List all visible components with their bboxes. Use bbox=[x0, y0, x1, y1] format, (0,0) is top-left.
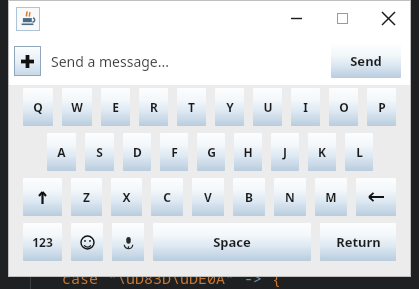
staticText: X bbox=[122, 189, 131, 205]
staticText: E bbox=[112, 99, 119, 115]
button[interactable]: J bbox=[271, 133, 299, 171]
staticText: S bbox=[96, 144, 103, 160]
button[interactable]: Maximize bbox=[319, 0, 365, 37]
button[interactable]: I bbox=[291, 88, 320, 126]
staticText: C bbox=[163, 189, 171, 205]
staticText: { bbox=[272, 268, 282, 288]
staticText: Q bbox=[33, 99, 43, 115]
staticText: I bbox=[303, 99, 308, 115]
button[interactable]: Minimize bbox=[273, 0, 319, 37]
staticText: N bbox=[285, 189, 295, 205]
staticText: W bbox=[71, 99, 83, 115]
button[interactable]: Z bbox=[71, 178, 102, 216]
staticText: G bbox=[207, 144, 216, 160]
button[interactable]: Backspace bbox=[356, 178, 396, 216]
button[interactable]: Y bbox=[215, 88, 244, 126]
staticText: B bbox=[245, 189, 253, 205]
button[interactable]: N bbox=[274, 178, 306, 216]
button[interactable]: Send a message... bbox=[51, 37, 327, 85]
other: App icon bbox=[16, 7, 40, 31]
staticText: Z bbox=[83, 189, 90, 205]
button[interactable]: Close bbox=[365, 0, 411, 37]
staticText: O bbox=[339, 99, 349, 115]
button[interactable]: W bbox=[62, 88, 92, 126]
staticText: L bbox=[356, 144, 363, 160]
staticText: "\uD83D\uDE0A" bbox=[108, 268, 235, 288]
button[interactable]: O bbox=[329, 88, 358, 126]
button[interactable]: V bbox=[192, 178, 224, 216]
button[interactable]: Send bbox=[331, 44, 401, 78]
button[interactable]: Q bbox=[23, 88, 53, 126]
button[interactable]: A bbox=[47, 133, 76, 171]
staticText: M bbox=[325, 189, 337, 205]
button[interactable]: U bbox=[253, 88, 282, 126]
button[interactable]: B bbox=[233, 178, 265, 216]
staticText: Send bbox=[350, 52, 382, 70]
staticText: V bbox=[204, 189, 212, 205]
button[interactable]: Shift bbox=[23, 178, 62, 216]
staticText: Send a message... bbox=[51, 52, 169, 71]
button[interactable]: 123 bbox=[23, 223, 62, 261]
staticText: K bbox=[318, 144, 326, 160]
button[interactable]: Space bbox=[153, 223, 311, 261]
button[interactable]: C bbox=[151, 178, 183, 216]
button[interactable]: K bbox=[308, 133, 336, 171]
staticText: F bbox=[171, 144, 178, 160]
button[interactable]: R bbox=[139, 88, 168, 126]
button[interactable]: S bbox=[85, 133, 114, 171]
button[interactable]: T bbox=[177, 88, 206, 126]
button[interactable]: X bbox=[111, 178, 142, 216]
staticText: J bbox=[283, 144, 287, 160]
button[interactable]: F bbox=[160, 133, 188, 171]
button[interactable]: M bbox=[315, 178, 347, 216]
button[interactable]: Return bbox=[320, 223, 396, 261]
staticText: H bbox=[243, 144, 253, 160]
button[interactable]: G bbox=[197, 133, 225, 171]
button[interactable]: Voice input bbox=[112, 223, 144, 261]
staticText: U bbox=[263, 99, 273, 115]
staticText: Return bbox=[336, 233, 381, 251]
staticText: T bbox=[188, 99, 195, 115]
staticText: D bbox=[133, 144, 142, 160]
staticText: case bbox=[62, 268, 108, 288]
button[interactable]: Emoji bbox=[71, 223, 103, 261]
staticText: -> bbox=[235, 268, 272, 288]
button[interactable]: D bbox=[123, 133, 151, 171]
staticText: R bbox=[150, 99, 158, 115]
staticText: Space bbox=[213, 233, 251, 251]
button[interactable]: Add attachment bbox=[14, 46, 41, 76]
staticText: Y bbox=[226, 99, 234, 115]
button[interactable]: P bbox=[367, 88, 396, 126]
staticText: P bbox=[378, 99, 386, 115]
staticText: 123 bbox=[32, 234, 53, 250]
button[interactable]: H bbox=[234, 133, 262, 171]
button[interactable]: L bbox=[345, 133, 373, 171]
button[interactable]: E bbox=[101, 88, 130, 126]
staticText: A bbox=[57, 144, 66, 160]
